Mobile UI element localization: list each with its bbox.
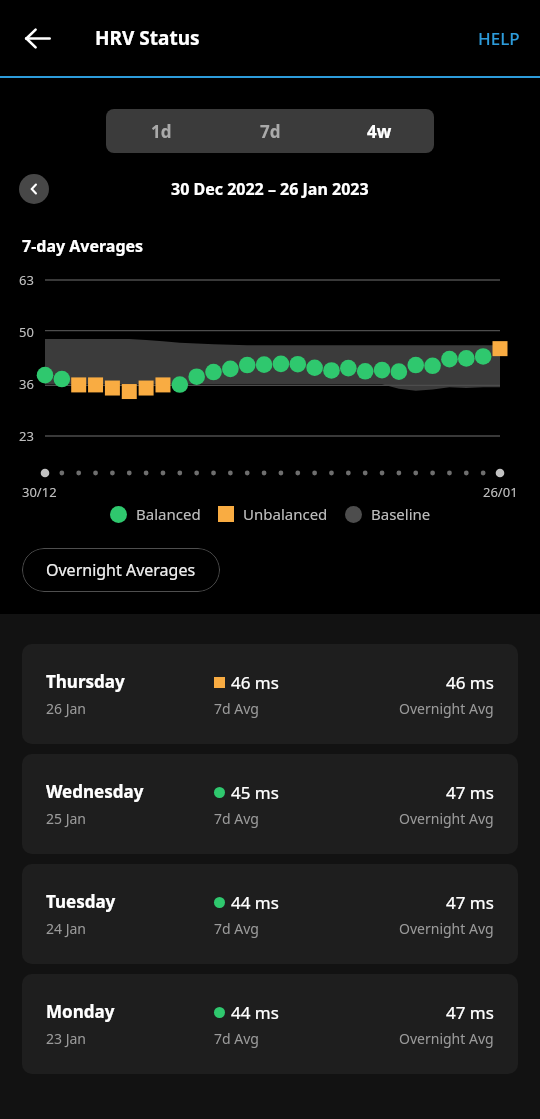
button[interactable]: Monday — [22, 974, 518, 1074]
staticText: 7d Avg — [214, 919, 259, 938]
staticText: 23 Jan — [46, 1029, 86, 1048]
staticText: Unbalanced — [243, 504, 328, 524]
button[interactable]: 4w — [325, 109, 434, 153]
staticText: 44 ms — [231, 891, 279, 914]
staticText: 26 Jan — [46, 699, 86, 718]
staticText: 4w — [367, 120, 392, 143]
button[interactable]: HELP — [468, 18, 530, 59]
staticText: Balanced — [136, 504, 201, 524]
button[interactable]: Overnight Averages — [22, 548, 220, 592]
staticText: Overnight Avg — [399, 1029, 494, 1048]
staticText: Overnight Avg — [399, 809, 494, 828]
staticText: Monday — [46, 1000, 115, 1023]
staticText: HELP — [478, 27, 520, 50]
staticText: 7-day Averages — [22, 235, 144, 257]
staticText: 46 ms — [446, 671, 494, 694]
button[interactable]: Back — [11, 12, 63, 64]
staticText: Baseline — [371, 504, 431, 524]
staticText: 24 Jan — [46, 919, 86, 938]
staticText: Overnight Avg — [399, 699, 494, 718]
staticText: 25 Jan — [46, 809, 86, 828]
staticText: 23 — [19, 427, 34, 445]
staticText: 63 — [19, 271, 34, 289]
staticText: 7d — [260, 120, 281, 143]
button[interactable]: Thursday — [22, 644, 518, 744]
button[interactable]: Wednesday — [22, 754, 518, 854]
button[interactable]: 1d — [106, 109, 216, 153]
staticText: 26/01 — [483, 483, 518, 501]
staticText: 47 ms — [446, 891, 494, 914]
staticText: 50 — [19, 323, 34, 341]
staticText: Thursday — [46, 670, 125, 693]
button[interactable]: Tuesday — [22, 864, 518, 964]
staticText: 30 Dec 2022 – 26 Jan 2023 — [171, 178, 369, 200]
staticText: Wednesday — [46, 780, 144, 803]
staticText: 7d Avg — [214, 1029, 259, 1048]
staticText: Tuesday — [46, 890, 116, 913]
staticText: 30/12 — [22, 483, 57, 501]
staticText: 7d Avg — [214, 699, 259, 718]
staticText: HRV Status — [95, 25, 200, 51]
staticText: 44 ms — [231, 1001, 279, 1024]
button[interactable]: Previous period — [19, 174, 49, 204]
staticText: 47 ms — [446, 1001, 494, 1024]
staticText: 46 ms — [231, 671, 279, 694]
staticText: 7d Avg — [214, 809, 259, 828]
staticText: 45 ms — [231, 781, 279, 804]
staticText: 47 ms — [446, 781, 494, 804]
staticText: 1d — [151, 120, 172, 143]
staticText: 36 — [19, 375, 34, 393]
staticText: Overnight Averages — [46, 559, 196, 581]
staticText: Overnight Avg — [399, 919, 494, 938]
button[interactable]: 7d — [216, 109, 325, 153]
